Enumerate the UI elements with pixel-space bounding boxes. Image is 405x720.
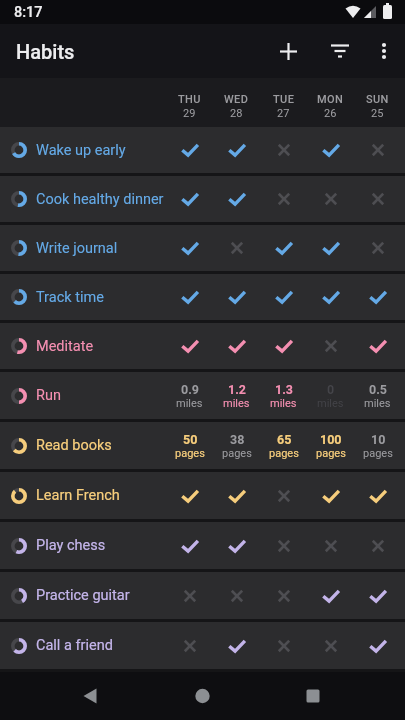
button[interactable]: Write journal	[0, 225, 405, 271]
button[interactable]: Learn French	[0, 472, 405, 519]
button[interactable]	[307, 572, 354, 619]
button[interactable]	[166, 622, 213, 669]
button[interactable]: Call a friend	[0, 622, 405, 669]
button[interactable]	[213, 472, 260, 519]
button[interactable]: 0	[307, 372, 354, 419]
button[interactable]	[307, 225, 354, 271]
staticText: Cook healthy dinner	[36, 191, 166, 208]
staticText: pages	[269, 447, 299, 460]
staticText: MON	[317, 93, 344, 106]
button[interactable]	[307, 472, 354, 519]
staticText: 1.2	[228, 382, 246, 397]
button[interactable]	[354, 522, 401, 569]
button[interactable]	[166, 225, 213, 271]
staticText: 0.5	[369, 382, 387, 397]
button[interactable]	[260, 274, 307, 320]
staticText: 28	[230, 107, 243, 120]
staticText: 65	[277, 432, 292, 447]
button[interactable]: 50	[166, 422, 213, 469]
button[interactable]: 10	[354, 422, 401, 469]
button[interactable]: 1.3	[260, 372, 307, 419]
staticText: SUN	[366, 93, 389, 106]
button[interactable]	[354, 127, 401, 173]
button[interactable]	[0, 672, 135, 720]
button[interactable]	[260, 323, 307, 369]
button[interactable]: Cook healthy dinner	[0, 176, 405, 222]
button[interactable]	[213, 176, 260, 222]
button[interactable]	[307, 127, 354, 173]
staticText: Call a friend	[36, 637, 166, 654]
button[interactable]	[363, 30, 405, 72]
button[interactable]: Wake up early	[0, 127, 405, 173]
button[interactable]	[260, 522, 307, 569]
button[interactable]	[354, 176, 401, 222]
button[interactable]	[166, 522, 213, 569]
button[interactable]	[354, 323, 401, 369]
button[interactable]	[260, 127, 307, 173]
staticText: THU	[178, 93, 201, 106]
button[interactable]	[354, 225, 401, 271]
button[interactable]	[166, 472, 213, 519]
button[interactable]	[317, 28, 363, 74]
button[interactable]	[354, 622, 401, 669]
button[interactable]	[307, 522, 354, 569]
button[interactable]	[166, 323, 213, 369]
button[interactable]: Run	[0, 372, 405, 419]
staticText: miles	[270, 397, 297, 410]
button[interactable]	[213, 522, 260, 569]
button[interactable]: 0.5	[354, 372, 401, 419]
button[interactable]: 65	[260, 422, 307, 469]
button[interactable]: 1.2	[213, 372, 260, 419]
staticText: WED	[224, 93, 249, 106]
button[interactable]	[166, 127, 213, 173]
button[interactable]: Read books	[0, 422, 405, 469]
button[interactable]: Track time	[0, 274, 405, 320]
staticText: TUE	[273, 93, 295, 106]
button[interactable]	[213, 622, 260, 669]
staticText: miles	[317, 397, 344, 410]
button[interactable]	[135, 672, 270, 720]
button[interactable]: Play chess	[0, 522, 405, 569]
button[interactable]	[166, 274, 213, 320]
staticText: 29	[183, 107, 196, 120]
button[interactable]	[166, 176, 213, 222]
button[interactable]	[354, 274, 401, 320]
button[interactable]	[307, 274, 354, 320]
staticText: Write journal	[36, 240, 166, 257]
button[interactable]	[260, 176, 307, 222]
button[interactable]: 100	[307, 422, 354, 469]
button[interactable]	[354, 472, 401, 519]
button[interactable]	[270, 672, 405, 720]
button[interactable]	[307, 622, 354, 669]
button[interactable]	[166, 572, 213, 619]
button[interactable]: Practice guitar	[0, 572, 405, 619]
button[interactable]: Meditate	[0, 323, 405, 369]
button[interactable]	[260, 472, 307, 519]
staticText: Wake up early	[36, 142, 166, 159]
staticText: 0.9	[181, 382, 199, 397]
staticText: miles	[176, 397, 203, 410]
button[interactable]	[307, 176, 354, 222]
staticText: 50	[183, 432, 198, 447]
button[interactable]	[213, 127, 260, 173]
staticText: Meditate	[36, 338, 166, 355]
staticText: 8:17	[14, 4, 43, 21]
button[interactable]	[260, 572, 307, 619]
button[interactable]: 0.9	[166, 372, 213, 419]
button[interactable]: 38	[213, 422, 260, 469]
button[interactable]	[260, 225, 307, 271]
staticText: Run	[36, 387, 166, 404]
staticText: 27	[277, 107, 290, 120]
button[interactable]	[260, 622, 307, 669]
staticText: 38	[230, 432, 245, 447]
button[interactable]	[213, 225, 260, 271]
button[interactable]	[213, 572, 260, 619]
button[interactable]	[213, 274, 260, 320]
staticText: Track time	[36, 289, 166, 306]
staticText: miles	[223, 397, 250, 410]
button[interactable]	[265, 28, 311, 74]
staticText: pages	[222, 447, 252, 460]
button[interactable]	[213, 323, 260, 369]
button[interactable]	[307, 323, 354, 369]
button[interactable]	[354, 572, 401, 619]
